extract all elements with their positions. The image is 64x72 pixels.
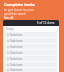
staticText: Task item — [10, 39, 23, 43]
staticText: See all — [4, 16, 14, 20]
staticText: Task item — [10, 68, 23, 72]
staticText: Task item — [10, 51, 23, 55]
staticText: 5 of 12 done — [37, 21, 55, 25]
staticText: to get closer to your goal this week — [4, 8, 35, 16]
staticText: Task item — [10, 33, 23, 37]
button[interactable]: Task item — [5, 68, 57, 72]
button[interactable]: Task item — [5, 62, 57, 67]
button[interactable]: Task item — [5, 32, 57, 37]
button[interactable]: Task item — [5, 50, 57, 55]
staticText: Task item — [10, 57, 23, 61]
staticText: Today — [6, 27, 14, 31]
staticText: Complete tasks — [4, 2, 35, 7]
button[interactable]: 5 of 12 done — [3, 20, 59, 26]
button[interactable]: Task item — [5, 56, 57, 61]
button[interactable]: Task item — [5, 38, 57, 43]
staticText: Task item — [10, 63, 23, 67]
button[interactable]: Task item — [5, 44, 57, 49]
staticText: Task item — [10, 45, 23, 49]
